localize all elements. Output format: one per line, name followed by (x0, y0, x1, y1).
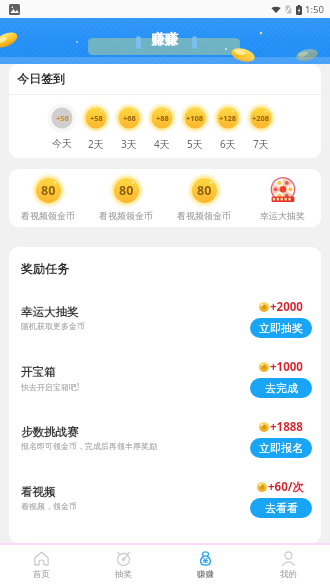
staticText: 80 (41, 182, 56, 199)
staticText: +68 (123, 113, 136, 123)
staticText: 赚赚 (151, 31, 178, 48)
staticText: 开宝箱 (21, 365, 56, 379)
button[interactable]: 去完成 (250, 378, 312, 398)
staticText: 快去开启宝箱吧! (21, 381, 80, 392)
staticText: +88 (156, 113, 169, 123)
button[interactable]: +68 (112, 103, 145, 151)
staticText: 幸运大抽奖 (260, 210, 305, 221)
staticText: 看视频领金币 (177, 210, 231, 221)
staticText: 看视频 (21, 485, 56, 499)
staticText: 5天 (187, 137, 203, 151)
button[interactable]: 首页 (0, 545, 82, 586)
button[interactable]: 80 (165, 173, 243, 221)
staticText: 3天 (121, 137, 137, 151)
staticText: 看视频，领金币 (21, 501, 77, 511)
staticText: 80 (197, 182, 212, 199)
button[interactable]: 立即抽奖 (250, 318, 312, 338)
staticText: 抽奖 (115, 569, 132, 580)
button[interactable]: 我的 (247, 545, 330, 586)
staticText: 看视频领金币 (21, 210, 75, 221)
button[interactable]: 80 (87, 173, 165, 221)
staticText: 80 (119, 182, 134, 199)
staticText: 6天 (220, 137, 236, 151)
staticText: 我的 (280, 569, 297, 580)
staticText: 立即抽奖 (259, 321, 303, 335)
button[interactable]: 赚赚 (164, 545, 247, 586)
button[interactable]: +108 (178, 103, 211, 151)
staticText: +128 (219, 113, 237, 123)
staticText: +208 (252, 113, 270, 123)
staticText: 去看看 (265, 501, 298, 515)
button[interactable]: +88 (145, 103, 178, 151)
button[interactable]: 幸运大抽奖 (243, 173, 321, 221)
staticText: 看视频领金币 (99, 210, 153, 221)
staticText: 去完成 (265, 381, 298, 395)
staticText: +1000 (270, 359, 303, 375)
staticText: 今天 (52, 137, 72, 150)
staticText: +56 (56, 113, 69, 123)
staticText: 随机获取更多金币 (21, 321, 85, 331)
staticText: 7天 (253, 137, 269, 151)
staticText: 2天 (88, 137, 104, 151)
staticText: 步数挑战赛 (21, 425, 79, 439)
staticText: +1888 (270, 419, 303, 435)
button[interactable]: 去看看 (250, 498, 312, 518)
staticText: 4天 (154, 137, 170, 151)
staticText: 报名即可领金币，完成后再领丰厚奖励 (21, 441, 157, 451)
button[interactable]: +58 (79, 103, 112, 151)
button[interactable]: 抽奖 (82, 545, 164, 586)
staticText: 立即报名 (259, 441, 303, 455)
staticText: 幸运大抽奖 (21, 305, 79, 319)
staticText: 奖励任务 (21, 261, 69, 276)
staticText: 赚赚 (197, 569, 214, 580)
button[interactable]: +56 (45, 103, 79, 150)
button[interactable]: +128 (211, 103, 244, 151)
staticText: +2000 (270, 299, 303, 315)
staticText: +58 (90, 113, 103, 123)
button[interactable]: +208 (244, 103, 277, 151)
staticText: 首页 (33, 569, 50, 580)
button[interactable]: 立即报名 (250, 438, 312, 458)
staticText: +108 (186, 113, 204, 123)
staticText: 今日签到 (17, 71, 65, 86)
button[interactable]: 80 (9, 173, 87, 221)
staticText: 1:50 (305, 3, 324, 16)
staticText: +60/次 (268, 479, 305, 495)
